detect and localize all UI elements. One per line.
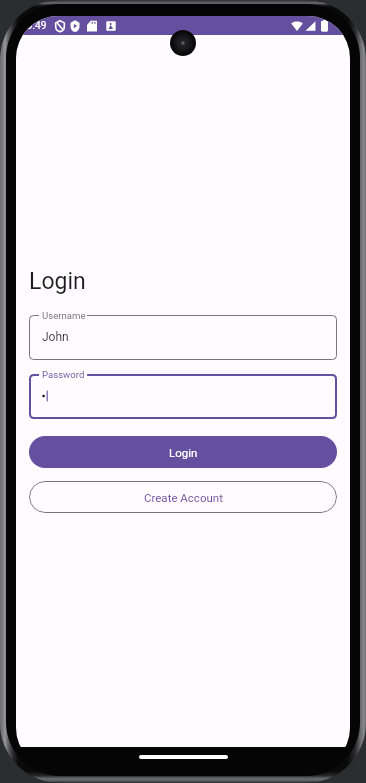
staticText: 9:49 <box>27 20 47 32</box>
staticText: Password <box>42 369 85 380</box>
staticText: Login <box>29 268 86 295</box>
button[interactable]: Username <box>29 315 337 360</box>
button[interactable]: Create Account <box>29 481 337 513</box>
button[interactable]: Login <box>29 436 337 468</box>
staticText: Create Account <box>144 491 223 504</box>
staticText: John <box>42 330 69 344</box>
staticText: Login <box>169 446 198 459</box>
button[interactable]: Password <box>29 374 337 419</box>
staticText: Username <box>42 310 86 321</box>
